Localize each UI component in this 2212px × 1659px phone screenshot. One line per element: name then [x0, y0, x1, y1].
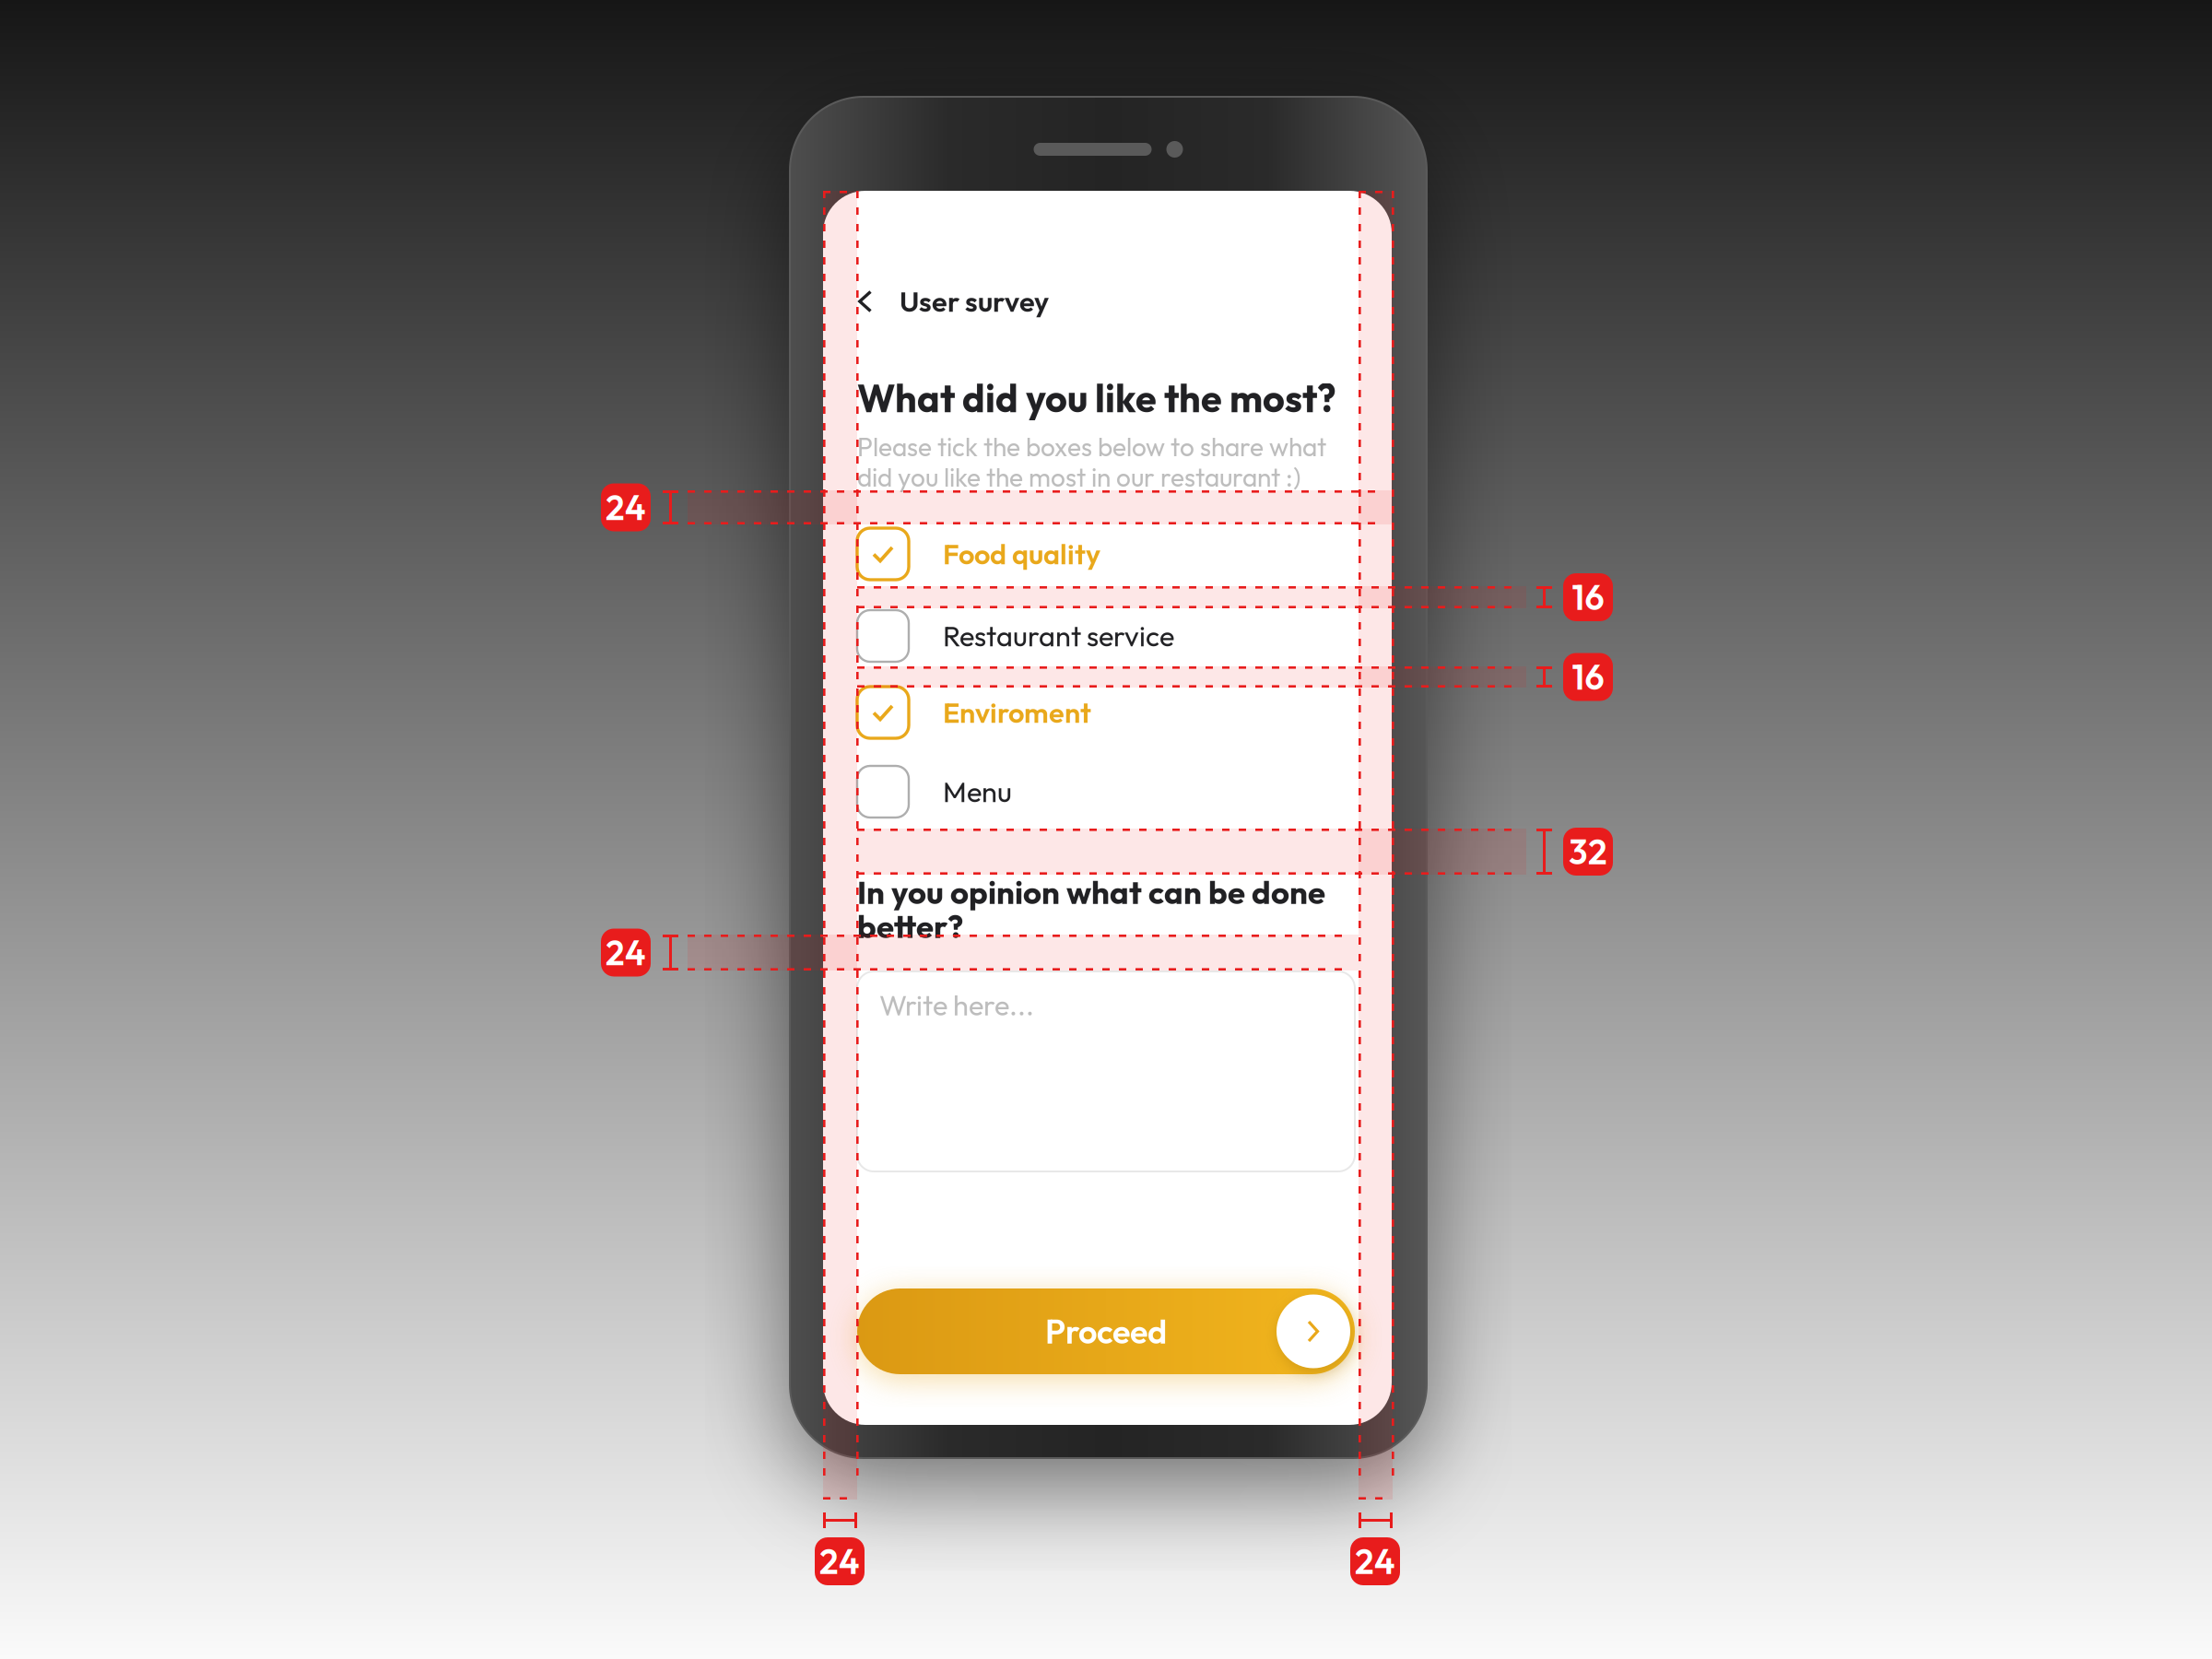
staticText: In you opinion what can be done — [857, 872, 1325, 912]
staticText: 24 — [606, 486, 646, 529]
staticText: Restaurant service — [943, 618, 1174, 654]
staticText: 24 — [819, 1540, 860, 1583]
staticText: Write here... — [879, 987, 1034, 1023]
staticText: Proceed — [1045, 1310, 1167, 1352]
staticText: better? — [857, 906, 963, 946]
button[interactable]: Write here... — [857, 971, 1355, 1171]
button[interactable]: Back — [857, 286, 873, 317]
staticText: Please tick the boxes below to share wha… — [857, 430, 1326, 463]
staticText: Menu — [943, 774, 1012, 809]
button[interactable]: Food quality — [857, 528, 1355, 580]
staticText: Enviroment — [943, 695, 1091, 730]
staticText: 24 — [1355, 1540, 1395, 1583]
staticText: What did you like the most? — [857, 374, 1336, 422]
staticText: Food quality — [943, 536, 1100, 572]
staticText: 24 — [606, 931, 646, 974]
staticText: did you like the most in our restaurant … — [857, 461, 1300, 493]
button[interactable]: Restaurant service — [857, 610, 1355, 662]
staticText: 32 — [1569, 830, 1607, 873]
button[interactable]: Menu — [857, 766, 1355, 818]
button[interactable]: Enviroment — [857, 687, 1355, 738]
staticText: User survey — [900, 284, 1049, 319]
staticText: 16 — [1572, 655, 1604, 699]
staticText: 16 — [1572, 576, 1604, 619]
button[interactable]: Proceed — [857, 1288, 1355, 1374]
